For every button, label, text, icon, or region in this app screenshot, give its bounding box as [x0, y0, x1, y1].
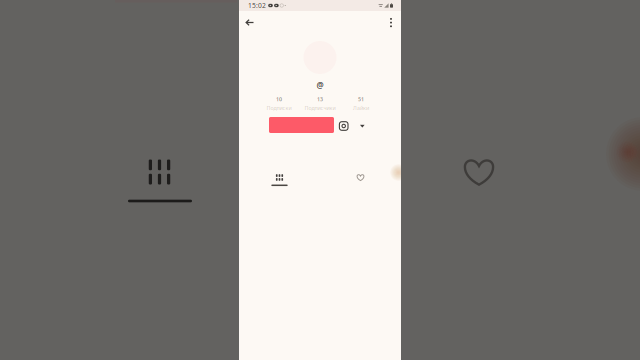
- staticText: 13: [317, 96, 323, 103]
- button[interactable]: 51: [340, 96, 381, 111]
- button[interactable]: Follow: [269, 117, 334, 133]
- staticText: 51: [358, 96, 364, 103]
- button[interactable]: Videos: [239, 168, 320, 194]
- button[interactable]: Instagram: [336, 118, 352, 134]
- staticText: @: [316, 80, 323, 90]
- button[interactable]: Show more: [355, 118, 369, 134]
- staticText: Подписки: [266, 104, 291, 111]
- staticText: Лайки: [353, 104, 369, 111]
- staticText: 10: [276, 96, 282, 103]
- button[interactable]: 10: [258, 96, 299, 111]
- button[interactable]: Back: [238, 11, 260, 33]
- button[interactable]: Liked: [320, 168, 401, 194]
- staticText: Подписчики: [304, 104, 335, 111]
- button[interactable]: More options: [380, 12, 402, 34]
- button[interactable]: 13: [299, 96, 340, 111]
- staticText: 15:02: [248, 1, 266, 10]
